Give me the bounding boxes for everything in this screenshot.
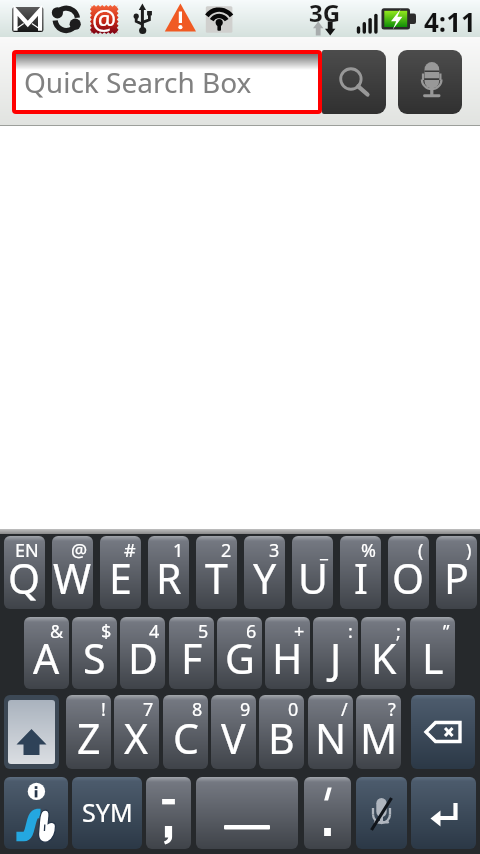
button[interactable]: L (410, 617, 455, 689)
staticText: N (315, 710, 347, 766)
staticText: U (298, 550, 328, 606)
button[interactable]: P (436, 536, 477, 609)
staticText: Quick Search Box (24, 63, 252, 101)
button[interactable]: K (361, 617, 406, 689)
button[interactable]: Z (66, 695, 111, 769)
button[interactable]: W (52, 536, 93, 609)
staticText: C (173, 710, 199, 766)
button[interactable]: U (292, 536, 333, 609)
staticText: J (330, 630, 342, 686)
button[interactable]: Q (4, 536, 45, 609)
button[interactable]: Quick Search Box (16, 54, 318, 110)
staticText: # (124, 538, 136, 563)
staticText: 7 (143, 697, 154, 722)
button[interactable]: Input method (4, 777, 68, 849)
staticText: : (348, 619, 353, 644)
staticText: 3G (309, 0, 341, 29)
button[interactable]: Voice search (398, 50, 462, 114)
staticText: S (83, 630, 106, 686)
staticText: ( (418, 538, 424, 563)
button[interactable]: B (259, 695, 304, 769)
staticText: Y (253, 550, 277, 606)
staticText: H (272, 630, 303, 686)
staticText: 5 (198, 619, 209, 644)
button[interactable]: O (388, 536, 429, 609)
staticText: E (109, 550, 132, 606)
button[interactable]: D (120, 617, 165, 689)
staticText: 8 (192, 697, 203, 722)
staticText: $ (101, 619, 112, 644)
button[interactable]: E (100, 536, 141, 609)
button[interactable]: H (265, 617, 310, 689)
staticText: / (341, 697, 348, 722)
staticText: M (360, 710, 398, 766)
button[interactable]: A (24, 617, 69, 689)
button[interactable]: Space (196, 777, 298, 849)
button[interactable]: I (340, 536, 381, 609)
staticText: @ (92, 1, 117, 38)
staticText: L (422, 630, 444, 686)
button[interactable]: Voice input (356, 777, 407, 849)
staticText: 1 (173, 538, 184, 563)
staticText: P (444, 550, 469, 606)
button[interactable]: Delete (411, 695, 475, 769)
staticText: Z (77, 710, 101, 766)
button[interactable]: V (211, 695, 256, 769)
staticText: 4:11 (424, 4, 476, 39)
staticText: T (205, 550, 228, 606)
staticText: F (181, 630, 203, 686)
staticText: I (354, 550, 368, 606)
staticText: K (371, 630, 397, 686)
staticText: ! (101, 697, 106, 722)
staticText: ” (443, 619, 450, 644)
staticText: % (361, 538, 376, 563)
staticText: 2 (221, 538, 232, 563)
staticText: R (156, 550, 182, 606)
staticText: @ (71, 538, 88, 563)
staticText: & (50, 619, 64, 644)
staticText: V (221, 710, 246, 766)
staticText: ? (388, 697, 396, 722)
staticText: ; (396, 619, 401, 644)
staticText: 0 (288, 697, 299, 722)
button[interactable]: T (196, 536, 237, 609)
button[interactable]: J (313, 617, 358, 689)
staticText: Q (8, 550, 41, 606)
button[interactable]: S (72, 617, 117, 689)
staticText: _ (320, 538, 328, 563)
button[interactable]: Comma (146, 777, 191, 849)
staticText: EN (15, 538, 39, 563)
staticText: X (124, 710, 149, 766)
button[interactable]: SYM (72, 777, 142, 849)
button[interactable]: Enter (411, 777, 476, 849)
staticText: D (128, 630, 158, 686)
button[interactable]: M (356, 695, 401, 769)
button[interactable]: Shift (4, 695, 59, 769)
staticText: ) (466, 538, 472, 563)
staticText: SYM (82, 795, 133, 829)
staticText: 6 (246, 619, 257, 644)
button[interactable]: C (163, 695, 208, 769)
staticText: + (294, 619, 305, 644)
button[interactable]: G (217, 617, 262, 689)
staticText: 3 (269, 538, 280, 563)
staticText: W (53, 550, 92, 606)
staticText: 9 (240, 697, 251, 722)
button[interactable]: N (308, 695, 353, 769)
staticText: O (392, 550, 425, 606)
staticText: A (33, 630, 60, 686)
staticText: 4 (149, 619, 160, 644)
button[interactable]: F (169, 617, 214, 689)
staticText: B (268, 710, 295, 766)
staticText: G (225, 630, 255, 686)
button[interactable]: Search (322, 50, 386, 114)
button[interactable]: Y (244, 536, 285, 609)
button[interactable]: X (114, 695, 159, 769)
button[interactable]: R (148, 536, 189, 609)
button[interactable]: Period (304, 777, 351, 849)
